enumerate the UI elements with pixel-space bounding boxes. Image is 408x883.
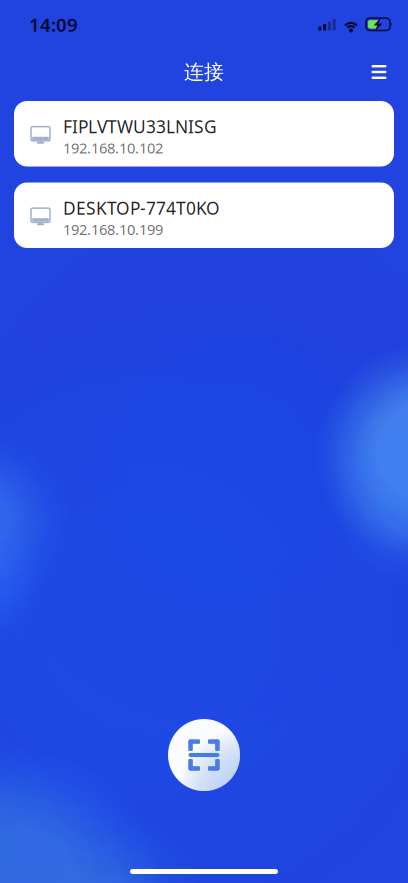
staticText: 192.168.10.199: [63, 219, 163, 239]
button[interactable]: DESKTOP-774T0KO: [14, 182, 394, 248]
button[interactable]: FIPLVTWU33LNISG: [14, 101, 394, 166]
staticText: 14:09: [29, 12, 78, 37]
staticText: 192.168.10.102: [63, 138, 163, 157]
staticText: FIPLVTWU33LNISG: [63, 115, 217, 138]
staticText: 连接: [184, 60, 224, 84]
button[interactable]: Scan QR code: [168, 719, 240, 791]
staticText: DESKTOP-774T0KO: [63, 196, 220, 219]
button[interactable]: Menu: [357, 50, 401, 94]
